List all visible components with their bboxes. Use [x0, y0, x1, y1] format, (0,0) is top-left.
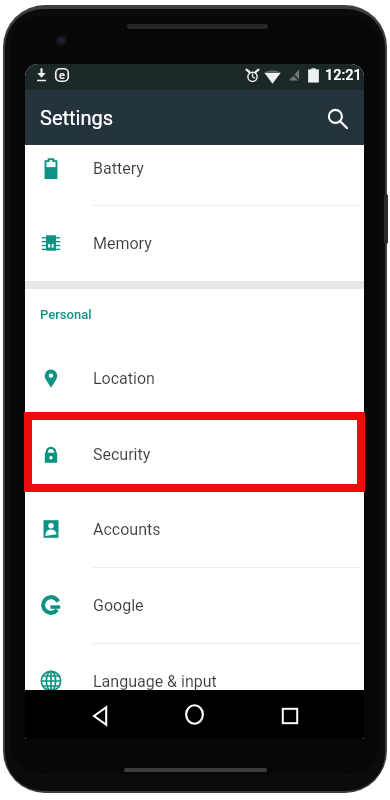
- button[interactable]: Search: [316, 97, 358, 139]
- staticText: Battery: [93, 159, 144, 178]
- staticText: Settings: [40, 106, 114, 129]
- staticText: Location: [93, 369, 155, 388]
- button[interactable]: Memory: [25, 205, 364, 281]
- staticText: Security: [93, 445, 151, 464]
- button[interactable]: Home: [157, 690, 232, 739]
- button[interactable]: Google: [25, 567, 364, 643]
- button[interactable]: Battery: [25, 145, 364, 206]
- button[interactable]: Location: [25, 340, 364, 416]
- button[interactable]: Back: [63, 690, 138, 739]
- staticText: Google: [93, 596, 144, 615]
- button[interactable]: Accounts: [25, 491, 364, 567]
- staticText: 12:21: [325, 67, 362, 84]
- button[interactable]: Security: [25, 416, 364, 492]
- staticText: Memory: [93, 234, 152, 253]
- staticText: Accounts: [93, 520, 161, 539]
- staticText: Personal: [40, 307, 92, 322]
- button[interactable]: Language & input: [25, 643, 364, 690]
- staticText: e: [59, 69, 65, 82]
- staticText: Language & input: [93, 672, 217, 690]
- button[interactable]: Recents: [252, 690, 327, 739]
